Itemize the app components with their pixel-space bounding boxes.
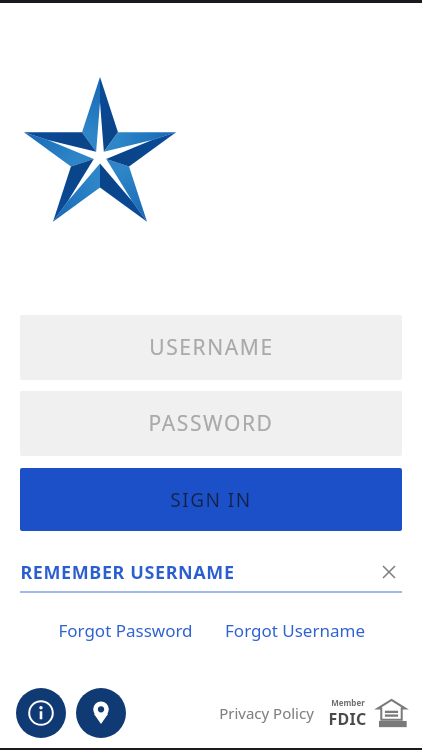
button[interactable]: SIGN IN (20, 468, 402, 531)
button[interactable]: PASSWORD (20, 391, 402, 456)
staticText: Member (331, 697, 365, 708)
staticText: Privacy Policy (219, 703, 314, 723)
button[interactable]: Find a location (76, 688, 126, 738)
staticText: Forgot Username (225, 619, 365, 642)
staticText: PASSWORD (148, 409, 274, 438)
staticText: Forgot Password (58, 619, 193, 642)
button[interactable]: USERNAME (20, 315, 402, 380)
button[interactable]: REMEMBER USERNAME (20, 553, 402, 593)
staticText: REMEMBER USERNAME (20, 560, 235, 585)
button[interactable]: Information (16, 688, 66, 738)
button[interactable]: Privacy Policy (215, 697, 318, 729)
button[interactable]: Forgot Username (219, 613, 371, 648)
staticText: SIGN IN (170, 487, 252, 513)
button[interactable]: Forgot Password (52, 613, 199, 648)
staticText: FDIC (328, 708, 367, 730)
staticText: USERNAME (149, 333, 274, 362)
button[interactable]: Clear remembered username (376, 559, 402, 585)
